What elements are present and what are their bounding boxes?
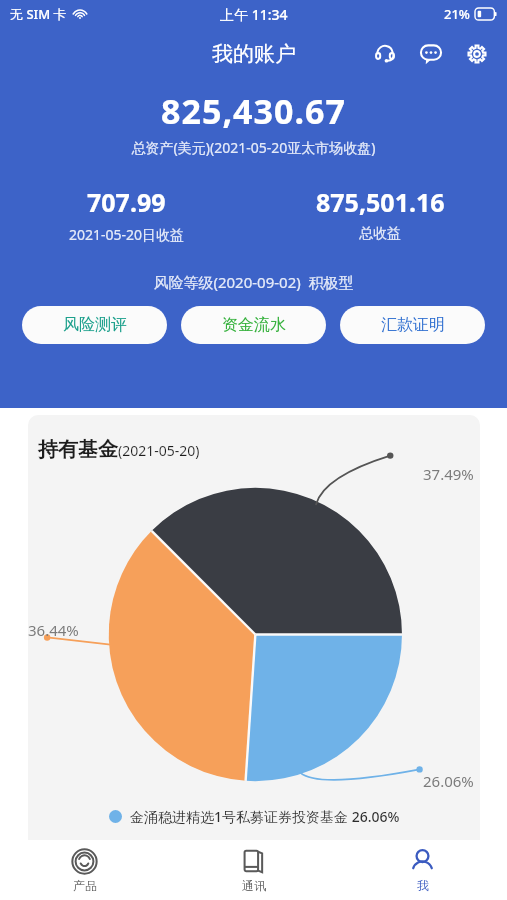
button[interactable]: 资金流水 xyxy=(181,306,326,344)
button[interactable]: 我 xyxy=(338,840,507,900)
button[interactable]: Messages xyxy=(415,38,447,70)
staticText: 产品 xyxy=(73,878,97,893)
button[interactable]: 通讯 xyxy=(169,840,338,900)
button[interactable]: 产品 xyxy=(0,840,169,900)
staticText: 我的账户 xyxy=(212,41,296,67)
staticText: 通讯 xyxy=(242,878,266,893)
staticText: (2021-05-20) xyxy=(118,441,200,460)
staticText: 资金流水 xyxy=(222,315,286,335)
staticText: 我 xyxy=(417,878,429,893)
staticText: 21% xyxy=(444,5,470,23)
staticText: 2021-05-20日收益 xyxy=(69,225,185,244)
staticText: 上午 11:34 xyxy=(220,5,288,24)
staticText: 36.44% xyxy=(28,620,79,640)
staticText: 汇款证明 xyxy=(381,315,445,335)
staticText: 26.06% xyxy=(423,771,474,791)
staticText: 707.99 xyxy=(87,185,166,219)
staticText: 总资产(美元)(2021-05-20亚太市场收盘) xyxy=(0,138,507,157)
staticText: 风险测评 xyxy=(63,315,127,335)
staticText: 金涌稳进精选1号私募证券投资基金 26.06% xyxy=(130,807,400,826)
button[interactable]: Customer service xyxy=(369,38,401,70)
staticText: 无 SIM 卡 xyxy=(10,5,67,23)
staticText: 875,501.16 xyxy=(316,185,445,219)
staticText: 风险等级(2020-09-02) 积极型 xyxy=(0,272,507,292)
button[interactable]: 风险测评 xyxy=(22,306,167,344)
staticText: 持有基金 xyxy=(38,437,118,462)
button[interactable]: 汇款证明 xyxy=(340,306,485,344)
staticText: 37.49% xyxy=(423,464,474,484)
staticText: 总收益 xyxy=(359,225,401,243)
staticText: 825,430.67 xyxy=(0,88,507,134)
button[interactable]: Settings xyxy=(461,38,493,70)
